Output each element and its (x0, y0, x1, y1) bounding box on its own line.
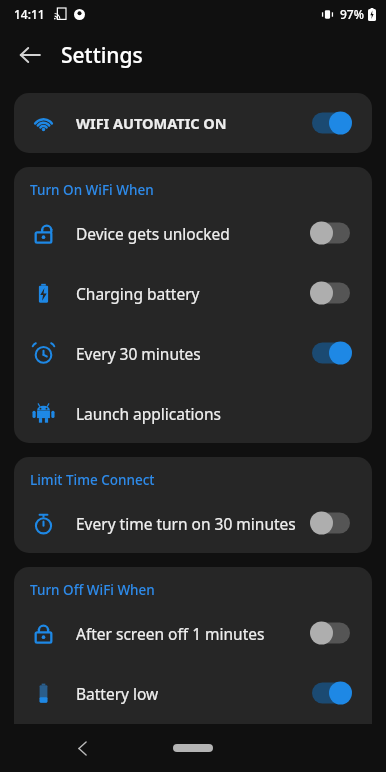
staticText: 97% (340, 6, 364, 22)
button[interactable]: Charging battery (14, 263, 372, 323)
staticText: 14:11 (14, 6, 45, 22)
staticText: WIFI AUTOMATIC ON (76, 113, 308, 133)
button[interactable]: Device gets unlocked (14, 203, 372, 263)
staticText: Turn On WiFi When (30, 181, 154, 199)
button[interactable]: Every time turn on 30 minutes (14, 493, 372, 553)
button[interactable]: After screen off 1 minutes (14, 603, 372, 663)
staticText: Limit Time Connect (30, 471, 155, 489)
staticText: Every 30 minutes (76, 343, 308, 364)
button[interactable]: Back (8, 33, 52, 77)
button[interactable]: Back (65, 730, 101, 766)
staticText: Turn Off WiFi When (30, 581, 155, 599)
staticText: Charging battery (76, 283, 308, 304)
button[interactable]: Battery low (14, 663, 372, 723)
staticText: Settings (61, 41, 143, 70)
staticText: Every time turn on 30 minutes (76, 513, 308, 534)
staticText: Launch applications (76, 403, 354, 424)
staticText: Device gets unlocked (76, 223, 308, 244)
staticText: Battery low (76, 683, 308, 704)
button[interactable]: Every 30 minutes (14, 323, 372, 383)
button[interactable]: Home (173, 744, 213, 752)
button[interactable]: Launch applications (14, 383, 372, 443)
button[interactable]: WIFI AUTOMATIC ON (14, 93, 372, 153)
staticText: After screen off 1 minutes (76, 623, 308, 644)
